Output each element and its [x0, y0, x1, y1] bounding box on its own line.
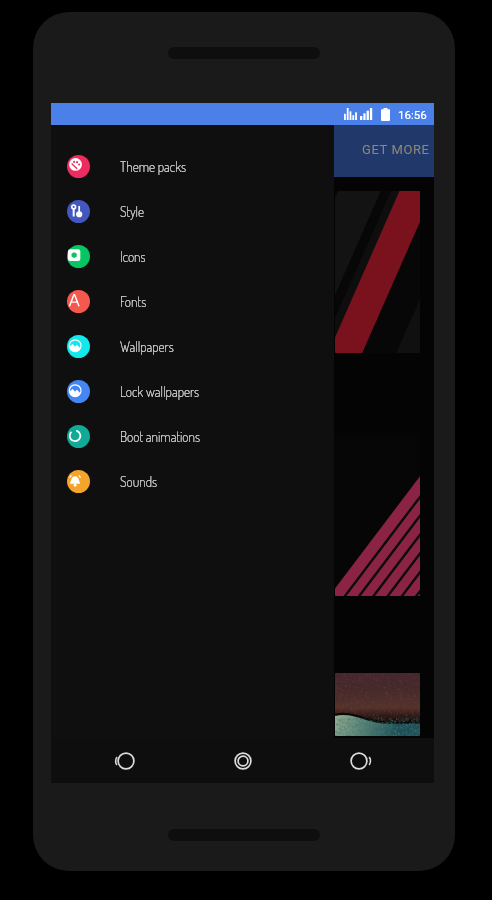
button[interactable]: Back — [109, 744, 143, 778]
button[interactable]: GET MORE — [344, 131, 434, 172]
staticText: Theme packs — [120, 158, 187, 175]
button[interactable]: Theme packs — [51, 144, 334, 189]
button[interactable]: Icons — [51, 234, 334, 279]
button[interactable]: Home — [226, 744, 260, 778]
button[interactable]: Lock wallpapers — [51, 369, 334, 414]
staticText: Fonts — [120, 293, 147, 310]
staticText: Wallpapers — [120, 338, 174, 355]
button[interactable]: Boot animations — [51, 414, 334, 459]
button[interactable]: Wallpapers — [51, 324, 334, 369]
staticText: Icons — [120, 248, 146, 265]
staticText: Style — [120, 203, 145, 220]
button[interactable]: Style — [51, 189, 334, 234]
button[interactable]: Sounds — [51, 459, 334, 504]
button[interactable]: Recents — [342, 744, 376, 778]
staticText: Boot animations — [120, 428, 201, 445]
staticText: GET MORE — [362, 142, 430, 157]
staticText: Lock wallpapers — [120, 383, 200, 400]
staticText: 16:56 — [398, 108, 427, 121]
staticText: Sounds — [120, 473, 158, 490]
button[interactable]: Fonts — [51, 279, 334, 324]
